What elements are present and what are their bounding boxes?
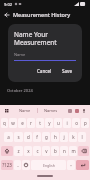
button[interactable]: Comma (14, 160, 21, 170)
staticText: October 2024 (7, 88, 33, 93)
button[interactable]: Translate (66, 107, 73, 114)
button[interactable]: t (36, 118, 44, 128)
button[interactable]: Voice input (80, 107, 87, 114)
button[interactable]: l (78, 132, 86, 142)
staticText: b (54, 148, 57, 154)
button[interactable]: g (42, 132, 50, 142)
staticText: l (81, 134, 83, 140)
staticText: e (21, 120, 24, 126)
staticText: d (27, 134, 30, 140)
staticText: English (43, 163, 55, 168)
staticText: t (39, 120, 41, 126)
staticText: g (45, 134, 48, 140)
button[interactable]: n (60, 146, 68, 156)
button[interactable]: r (27, 118, 35, 128)
staticText: c (36, 148, 39, 154)
staticText: Name (14, 52, 26, 57)
button[interactable]: Backspace (78, 146, 89, 156)
staticText: k (72, 134, 75, 140)
button[interactable]: ?123 (1, 160, 13, 170)
button[interactable]: c (33, 146, 41, 156)
button[interactable]: Shift (1, 146, 13, 156)
staticText: 9:02 (4, 2, 12, 7)
button[interactable]: Emoji (22, 160, 30, 170)
staticText: p (84, 120, 87, 126)
button[interactable]: d (24, 132, 32, 142)
button[interactable]: Name (12, 108, 37, 113)
button[interactable]: y (45, 118, 53, 128)
staticText: Cancel (37, 68, 52, 74)
button[interactable]: a (4, 132, 13, 142)
button[interactable]: i (63, 118, 71, 128)
button[interactable]: Period (67, 160, 75, 170)
staticText: r (30, 120, 32, 126)
staticText: n (63, 148, 66, 154)
staticText: i (66, 120, 68, 126)
staticText: q (3, 120, 6, 126)
button[interactable]: e (18, 118, 26, 128)
button[interactable]: p (81, 118, 89, 128)
staticText: y (48, 120, 51, 126)
button[interactable]: English (31, 160, 66, 170)
staticText: x (27, 148, 30, 154)
staticText: f (36, 134, 38, 140)
button[interactable]: Name (14, 52, 76, 61)
staticText: u (57, 120, 60, 126)
button[interactable]: Clipboard (73, 107, 80, 114)
button[interactable]: q (1, 118, 8, 128)
staticText: z (17, 148, 20, 154)
staticText: Name Your Measurement (14, 30, 57, 47)
staticText: j (63, 134, 65, 140)
button[interactable]: Back (0, 8, 13, 21)
button[interactable]: w (9, 118, 17, 128)
staticText: Save (62, 68, 73, 74)
staticText: o (75, 120, 78, 126)
button[interactable]: o (72, 118, 80, 128)
button[interactable]: k (69, 132, 77, 142)
button[interactable]: h (51, 132, 59, 142)
button[interactable]: x (24, 146, 32, 156)
staticText: h (54, 134, 57, 140)
button[interactable]: v (42, 146, 50, 156)
button[interactable]: f (33, 132, 41, 142)
button[interactable]: m (69, 146, 77, 156)
staticText: w (11, 120, 15, 126)
staticText: Names (44, 108, 58, 113)
staticText: ?123 (2, 162, 12, 168)
button[interactable]: Keyboard menu (3, 107, 10, 114)
button[interactable]: Cancel (34, 66, 55, 76)
button[interactable]: Enter (76, 160, 89, 170)
button[interactable]: s (14, 132, 23, 142)
button[interactable]: b (51, 146, 59, 156)
button[interactable]: j (60, 132, 68, 142)
staticText: a (7, 134, 10, 140)
button[interactable]: Names (38, 108, 64, 113)
button[interactable]: z (14, 146, 23, 156)
staticText: v (45, 148, 48, 154)
staticText: Measurement History (13, 11, 71, 18)
staticText: s (17, 134, 20, 140)
button[interactable]: Save (59, 66, 76, 76)
staticText: m (71, 148, 76, 154)
button[interactable]: u (54, 118, 62, 128)
staticText: Name (19, 108, 31, 113)
